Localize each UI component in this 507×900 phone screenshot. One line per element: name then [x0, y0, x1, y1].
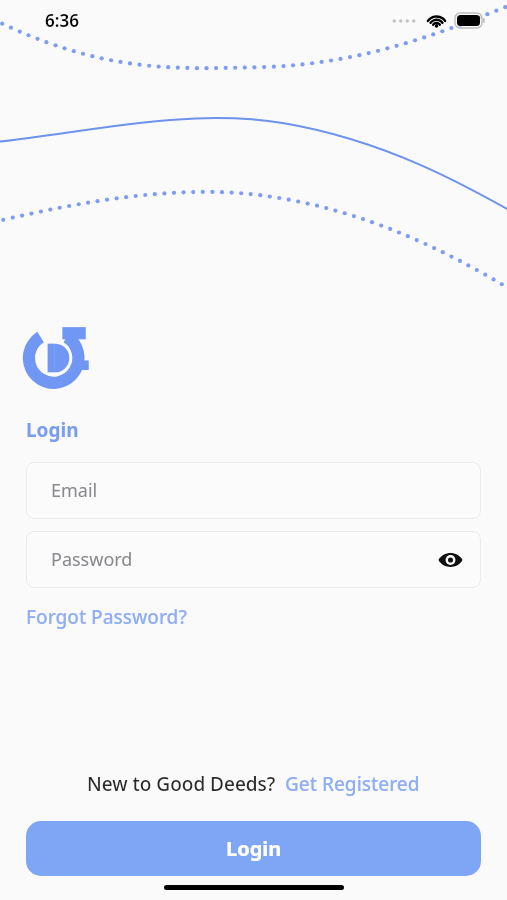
button[interactable]: Get Registered: [285, 771, 420, 797]
staticText: New to Good Deeds?: [87, 771, 276, 797]
staticText: Email: [51, 478, 98, 503]
staticText: Get Registered: [285, 771, 420, 797]
button[interactable]: Email: [26, 462, 481, 519]
staticText: Forgot Password?: [26, 604, 187, 630]
staticText: Login: [226, 835, 282, 862]
button[interactable]: Login: [26, 821, 481, 876]
staticText: Password: [51, 547, 133, 572]
staticText: Login: [26, 417, 79, 443]
button[interactable]: Forgot Password?: [26, 604, 187, 630]
staticText: 6:36: [45, 9, 79, 32]
button[interactable]: Show password: [432, 542, 468, 578]
button[interactable]: Password: [26, 531, 481, 588]
